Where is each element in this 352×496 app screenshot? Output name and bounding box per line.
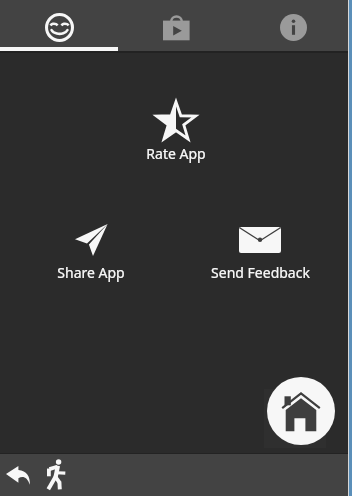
staticText: Share App [57, 263, 125, 282]
button[interactable]: Store tab [118, 0, 235, 51]
button[interactable]: Share App [21, 216, 161, 283]
button[interactable]: Home [267, 377, 335, 445]
button[interactable]: Back [0, 454, 35, 496]
button[interactable]: Walk [36, 454, 75, 496]
staticText: Rate App [146, 144, 206, 163]
button[interactable]: Home tab [0, 0, 118, 51]
staticText: Send Feedback [211, 263, 310, 282]
button[interactable]: Rate App [106, 97, 246, 164]
button[interactable]: Info tab [235, 0, 352, 51]
button[interactable]: Send Feedback [190, 216, 330, 283]
